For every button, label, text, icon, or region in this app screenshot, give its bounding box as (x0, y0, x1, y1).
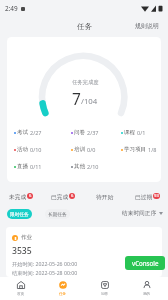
staticText: 0/1 (137, 129, 146, 136)
staticText: 93 (154, 193, 159, 199)
staticText: 未完成 (9, 194, 27, 201)
staticText: 限时任务 (10, 211, 29, 217)
staticText: 长期任务 (48, 211, 67, 217)
button[interactable]: 任务 (42, 277, 84, 300)
button[interactable]: vConsole (125, 256, 165, 270)
staticText: 任务完成度 (72, 79, 99, 86)
button[interactable]: 问答 (84, 277, 126, 300)
staticText: 其他 (74, 163, 85, 170)
staticText: 任务 (77, 22, 92, 31)
staticText: 6 (29, 193, 32, 199)
button[interactable]: 我的 (126, 277, 168, 300)
button[interactable]: 长期任务 (45, 209, 70, 219)
staticText: 0/0 (87, 146, 96, 153)
staticText: 7 (72, 88, 81, 109)
staticText: 1/8 (148, 146, 157, 153)
staticText: 结束时间正序 (122, 210, 157, 217)
staticText: 问卷 (74, 129, 85, 136)
staticText: 学习项目 (124, 146, 146, 153)
button[interactable]: 限时任务 (7, 209, 32, 219)
staticText: 作业 (21, 234, 32, 241)
button[interactable]: 规则说明 (135, 22, 159, 29)
staticText: 活动 (17, 146, 28, 153)
staticText: 问答 (101, 292, 109, 297)
button[interactable]: 作业 (6, 227, 162, 277)
staticText: 2/10 (87, 163, 99, 170)
staticText: 2:49 (5, 4, 18, 13)
button[interactable]: 未完成 (0, 191, 42, 203)
staticText: 结束时间: 2022-05-28 00:00 (12, 269, 78, 276)
staticText: 培训 (74, 146, 85, 153)
button[interactable]: 已完成 (42, 191, 84, 203)
button[interactable]: 已过期 (126, 191, 168, 203)
staticText: vConsole (132, 259, 159, 267)
button[interactable]: 结束时间正序 (122, 210, 163, 217)
staticText: 考试 (17, 129, 28, 136)
staticText: 0/11 (30, 163, 42, 170)
staticText: 待开始 (96, 194, 114, 201)
staticText: 开始时间: 2022-05-26 00:00 (12, 260, 78, 267)
staticText: /104 (81, 96, 98, 107)
staticText: 课程 (124, 129, 135, 136)
staticText: 已完成 (51, 194, 69, 201)
staticText: 我的 (143, 292, 151, 297)
staticText: 直播 (17, 163, 28, 170)
staticText: 3535 (12, 245, 32, 257)
staticText: 2/27 (30, 129, 42, 136)
button[interactable]: 待开始 (84, 191, 126, 203)
staticText: 2/37 (87, 129, 99, 136)
staticText: 0/10 (30, 146, 42, 153)
staticText: 任务 (59, 292, 67, 297)
button[interactable]: 首页 (0, 277, 42, 300)
staticText: 已过期 (135, 194, 153, 201)
staticText: 首页 (17, 292, 25, 297)
staticText: 6 (71, 193, 74, 199)
